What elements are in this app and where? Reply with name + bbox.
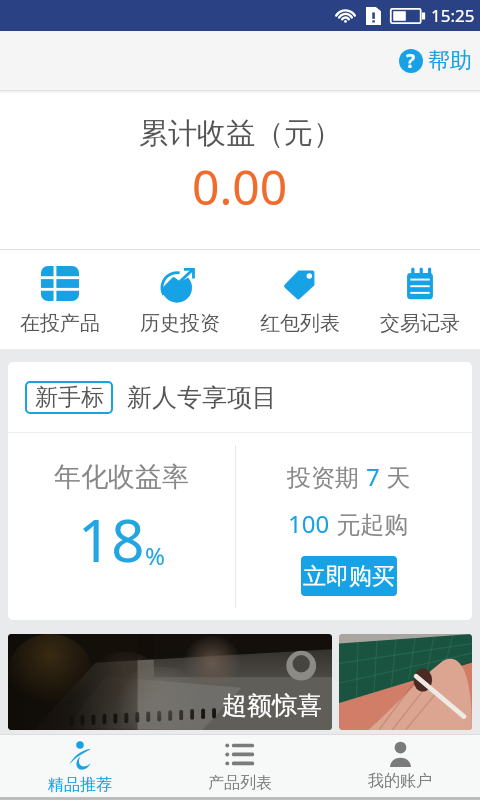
button[interactable]: 历史投资 xyxy=(120,250,240,349)
staticText: 100 xyxy=(288,507,330,540)
staticText: 精品推荐 xyxy=(48,775,112,795)
staticText: 0.00 xyxy=(192,154,288,219)
staticText: 交易记录 xyxy=(380,311,460,336)
button[interactable]: 超额惊喜 banner xyxy=(8,634,332,730)
staticText: 立即购买 xyxy=(303,562,395,591)
staticText: 天 xyxy=(380,460,411,493)
staticText: ? xyxy=(406,48,416,72)
button[interactable]: 在投产品 xyxy=(0,250,120,349)
staticText: 产品列表 xyxy=(208,773,272,793)
staticText: 超额惊喜 xyxy=(222,690,322,721)
button[interactable]: 我的账户 xyxy=(320,735,480,797)
staticText: 7 xyxy=(366,460,380,493)
button[interactable]: 精品推荐 xyxy=(0,735,160,797)
button[interactable]: 手工活动 banner xyxy=(339,634,472,730)
staticText: 历史投资 xyxy=(140,311,220,336)
button[interactable]: 新手标 xyxy=(8,362,472,620)
button[interactable]: 交易记录 xyxy=(360,250,480,349)
staticText: 年化收益率 xyxy=(54,460,189,494)
staticText: 在投产品 xyxy=(20,311,100,336)
staticText: 我的账户 xyxy=(368,771,432,791)
staticText: % xyxy=(145,539,165,572)
button[interactable]: 帮助 xyxy=(393,39,478,83)
staticText: 18 xyxy=(78,500,145,579)
staticText: 元起购 xyxy=(330,507,409,540)
staticText: 新手标 xyxy=(35,383,104,412)
staticText: 帮助 xyxy=(428,47,472,75)
staticText: 15:25 xyxy=(431,4,475,27)
staticText: 投资期 xyxy=(287,460,366,493)
staticText: 红包列表 xyxy=(260,311,340,336)
button[interactable]: 产品列表 xyxy=(160,735,320,797)
staticText: 新人专享项目 xyxy=(127,382,277,413)
staticText: 累计收益（元） xyxy=(139,115,342,152)
button[interactable]: 红包列表 xyxy=(240,250,360,349)
button[interactable]: 立即购买 xyxy=(301,556,397,596)
